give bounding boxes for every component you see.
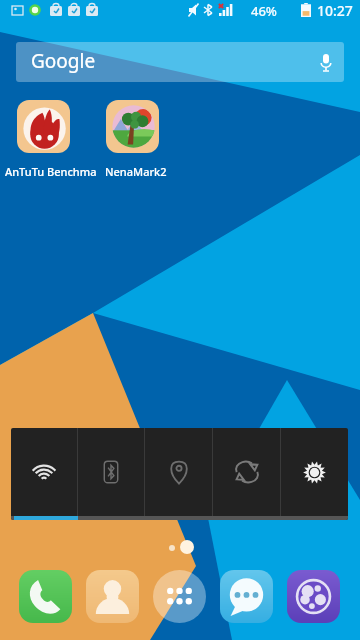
other: Brightness — [302, 460, 327, 485]
button[interactable] — [106, 100, 159, 153]
button[interactable]: Bluetooth — [78, 428, 144, 516]
other: Voice search — [320, 53, 332, 72]
button[interactable]: Phone — [19, 570, 72, 623]
staticText: NenaMark2 — [105, 164, 167, 179]
other: Wi-Fi — [31, 459, 57, 485]
other: Location — [166, 459, 192, 485]
button[interactable]: Wi-Fi — [11, 428, 77, 516]
staticText: 10:27 — [317, 1, 353, 20]
button[interactable]: Contacts — [86, 570, 139, 623]
staticText: 46% — [251, 2, 277, 20]
button[interactable] — [17, 100, 70, 153]
button[interactable]: Messages — [220, 570, 273, 623]
staticText: Google — [31, 48, 96, 74]
other: Bluetooth — [99, 460, 123, 484]
button[interactable]: Apps — [153, 570, 206, 623]
button[interactable]: Google — [16, 42, 344, 82]
other: Sync — [234, 459, 260, 485]
button[interactable]: Brightness — [281, 428, 348, 516]
button[interactable]: Sync — [213, 428, 280, 516]
staticText: AnTuTu Benchma — [5, 164, 97, 179]
button[interactable]: Location — [145, 428, 212, 516]
button[interactable]: Browser — [287, 570, 340, 623]
